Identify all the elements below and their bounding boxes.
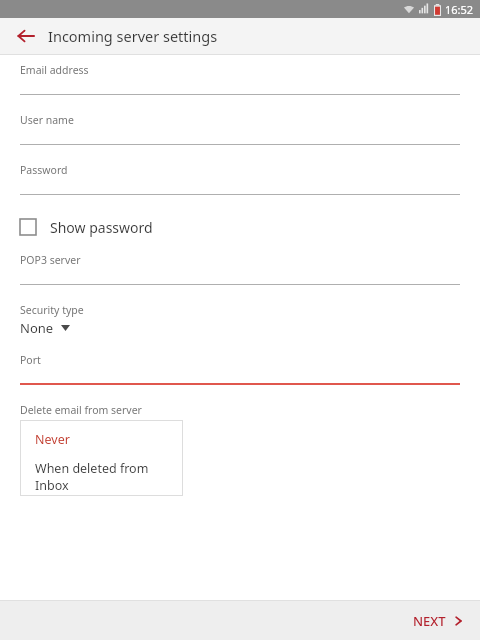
staticText: 16:52 [445, 2, 474, 17]
staticText: When deleted from Inbox [35, 460, 183, 494]
button[interactable]: NEXT [405, 606, 470, 636]
staticText: User name [20, 113, 74, 127]
staticText: Never [35, 431, 70, 448]
button[interactable]: Show password [20, 210, 153, 244]
staticText: Delete email from server [20, 403, 142, 417]
staticText: NEXT [413, 612, 446, 630]
staticText: Show password [50, 218, 153, 237]
button[interactable]: Back [12, 22, 40, 50]
staticText: Security type [20, 303, 84, 317]
button[interactable]: None [20, 319, 70, 337]
button[interactable]: Never [20, 420, 183, 458]
staticText: Email address [20, 63, 89, 77]
staticText: Port [20, 353, 41, 367]
staticText: Incoming server settings [48, 26, 218, 46]
staticText: None [20, 319, 54, 337]
staticText: Password [20, 163, 68, 177]
button[interactable]: When deleted from Inbox [20, 458, 183, 496]
staticText: POP3 server [20, 253, 81, 267]
